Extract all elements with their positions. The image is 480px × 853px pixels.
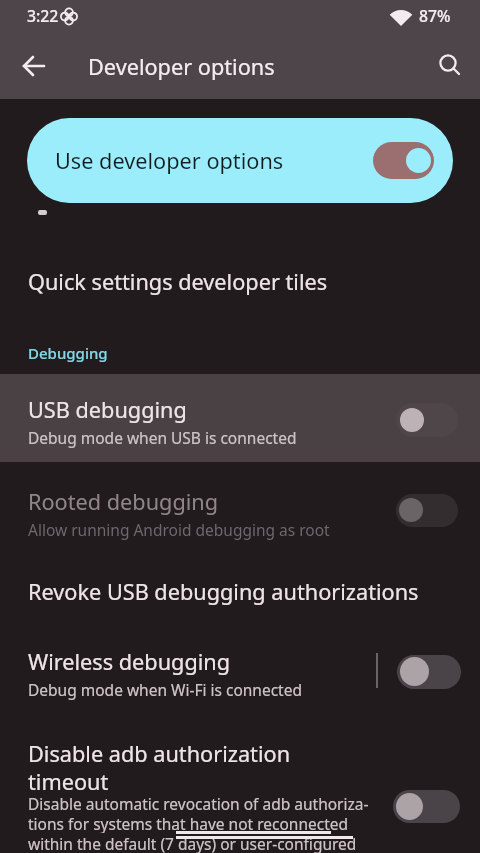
button[interactable] — [0, 632, 480, 718]
button[interactable] — [0, 550, 480, 632]
button[interactable] — [0, 251, 480, 311]
staticText: timeout — [28, 767, 109, 795]
button[interactable] — [0, 718, 480, 853]
staticText: 3:22 — [27, 5, 59, 27]
staticText: Use developer options — [55, 146, 284, 176]
button[interactable] — [0, 462, 480, 550]
button[interactable] — [394, 653, 460, 690]
button[interactable] — [0, 374, 480, 462]
staticText: Debug mode when Wi-Fi is connected — [28, 679, 302, 700]
button[interactable] — [426, 42, 474, 90]
staticText: Wireless debugging — [28, 647, 231, 675]
staticText: Disable adb authorization — [28, 739, 291, 767]
staticText: Developer options — [88, 52, 275, 80]
staticText: USB debugging — [28, 395, 187, 423]
staticText: Quick settings developer tiles — [28, 267, 328, 295]
staticText: Rooted debugging — [28, 487, 219, 515]
staticText: Debugging — [28, 343, 108, 363]
button[interactable]: Use developer options — [27, 118, 453, 203]
staticText: Disable automatic revocation of adb auth… — [28, 793, 369, 813]
staticText: 87% — [419, 5, 451, 27]
staticText: within the default (7 days) or user-conf… — [28, 833, 357, 853]
staticText: tions for systems that have not reconnec… — [28, 813, 349, 833]
button[interactable] — [10, 42, 58, 90]
staticText: Debug mode when USB is connected — [28, 427, 297, 448]
staticText: Revoke USB debugging authorizations — [28, 577, 419, 605]
staticText: Allow running Android debugging as root — [28, 519, 330, 540]
